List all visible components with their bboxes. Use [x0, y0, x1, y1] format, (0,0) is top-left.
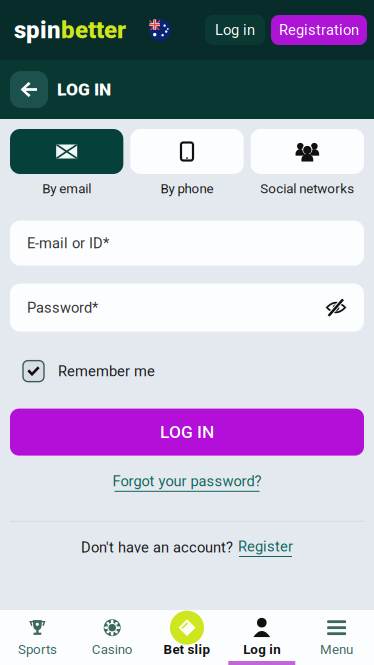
button[interactable]: Sports: [0, 610, 75, 665]
button[interactable]: Forgot your password?: [112, 473, 261, 492]
staticText: Forgot your password?: [112, 473, 261, 490]
staticText: LOG IN: [57, 79, 111, 100]
button[interactable]: Back: [10, 71, 48, 108]
button[interactable]: spinbetter home: [0, 10, 142, 50]
button[interactable]: By email: [10, 129, 123, 197]
staticText: Casino: [92, 642, 133, 657]
staticText: Social networks: [260, 181, 354, 197]
staticText: better: [61, 16, 126, 44]
staticText: Log in: [243, 642, 280, 657]
button[interactable]: Language: [142, 13, 178, 47]
button[interactable]: E-mail or ID*: [10, 221, 364, 266]
button[interactable]: Registration: [271, 15, 367, 45]
button[interactable]: Menu: [299, 610, 374, 665]
button[interactable]: LOG IN: [10, 409, 364, 456]
staticText: spin: [14, 16, 61, 44]
staticText: Remember me: [58, 362, 155, 380]
staticText: LOG IN: [160, 422, 214, 442]
staticText: E-mail or ID*: [27, 234, 109, 252]
staticText: Register: [238, 538, 293, 555]
staticText: Password*: [27, 299, 98, 316]
staticText: Menu: [320, 642, 353, 657]
button[interactable]: By phone: [130, 129, 244, 197]
staticText: By phone: [160, 181, 213, 197]
button[interactable]: Remember me: [23, 361, 351, 382]
staticText: Sports: [18, 642, 57, 657]
button[interactable]: Bet slip: [150, 610, 224, 665]
staticText: Log in: [215, 21, 255, 39]
button[interactable]: Password*: [10, 284, 364, 332]
button[interactable]: Log in: [224, 610, 299, 665]
button[interactable]: Social networks: [251, 129, 364, 197]
button[interactable]: Log in: [205, 15, 265, 45]
button[interactable]: Register: [238, 538, 293, 557]
staticText: Registration: [279, 21, 359, 39]
staticText: By email: [42, 181, 91, 197]
button[interactable]: Casino: [75, 610, 150, 665]
staticText: Bet slip: [163, 642, 210, 657]
staticText: Don't have an account?: [81, 539, 233, 556]
